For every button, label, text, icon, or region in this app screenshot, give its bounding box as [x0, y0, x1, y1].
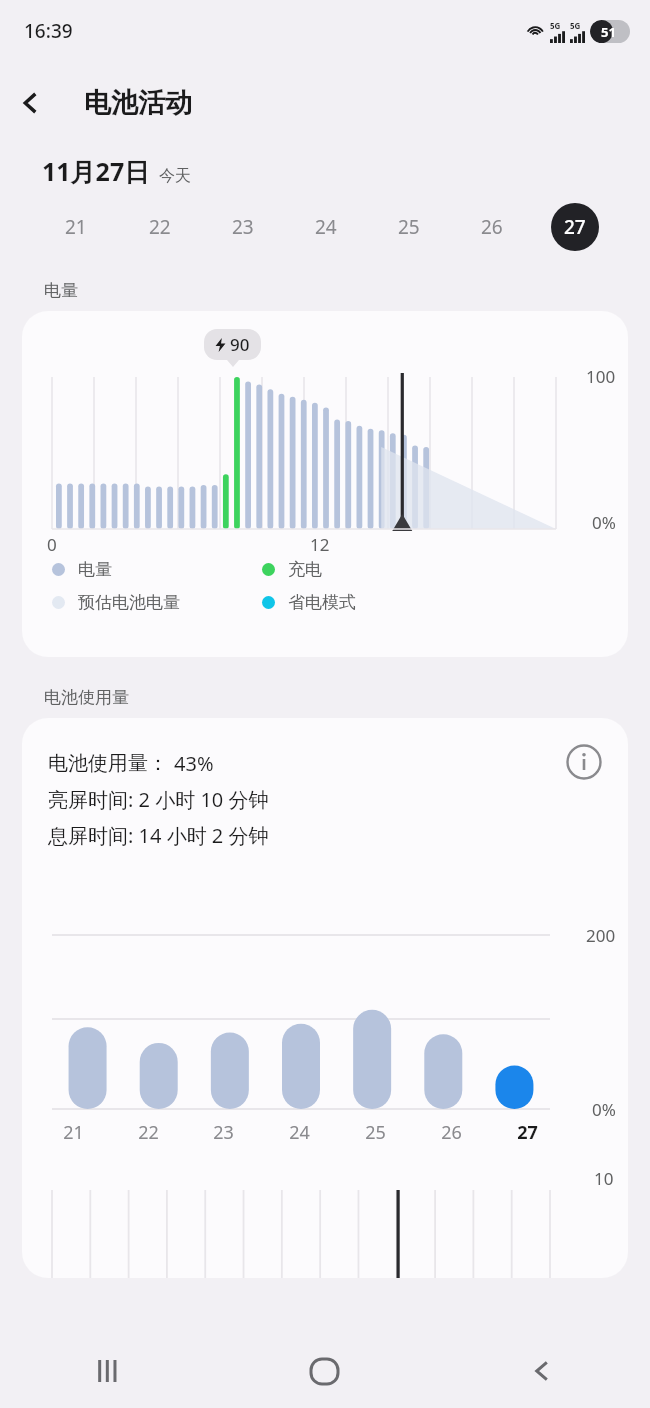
- staticText: 12: [310, 533, 330, 556]
- staticText: 200: [586, 924, 616, 947]
- staticText: 预估电池电量: [78, 592, 180, 613]
- staticText: 23: [232, 214, 254, 240]
- staticText: 电量: [78, 559, 112, 580]
- staticText: 充电: [288, 559, 322, 580]
- staticText: 27: [517, 1120, 538, 1145]
- staticText: 23: [213, 1120, 234, 1145]
- staticText: 11月27日: [42, 154, 150, 188]
- button[interactable]: 21: [34, 188, 118, 266]
- button[interactable]: 26: [450, 188, 533, 266]
- staticText: 电量: [44, 280, 78, 301]
- button[interactable]: Info: [562, 740, 606, 784]
- staticText: 24: [315, 214, 337, 240]
- staticText: 5G: [570, 20, 581, 31]
- staticText: 电池使用量：: [48, 751, 168, 776]
- staticText: 10: [594, 1167, 614, 1190]
- staticText: 22: [149, 214, 171, 240]
- staticText: 电池使用量: [44, 687, 129, 708]
- button[interactable]: Home: [216, 1334, 433, 1408]
- staticText: 24: [289, 1120, 310, 1145]
- staticText: 16:39: [24, 18, 73, 44]
- staticText: 27: [564, 214, 586, 240]
- button[interactable]: 24: [284, 188, 367, 266]
- button[interactable]: 25: [367, 188, 450, 266]
- staticText: 22: [138, 1120, 159, 1145]
- button[interactable]: 23: [201, 188, 284, 266]
- staticText: 26: [441, 1120, 462, 1145]
- staticText: 21: [63, 1120, 84, 1145]
- staticText: 0: [47, 533, 57, 556]
- button[interactable]: 电池使用量：: [22, 718, 628, 1278]
- button[interactable]: Back: [0, 72, 62, 134]
- button[interactable]: Back: [433, 1334, 650, 1408]
- staticText: 51: [601, 23, 616, 41]
- staticText: 90: [230, 333, 250, 356]
- staticText: 息屏时间: 14 小时 2 分钟: [48, 822, 269, 849]
- staticText: 0%: [592, 1098, 616, 1121]
- staticText: 26: [481, 214, 503, 240]
- staticText: 0%: [592, 511, 616, 534]
- staticText: 电池活动: [84, 86, 192, 120]
- button[interactable]: 22: [118, 188, 201, 266]
- button[interactable]: 27: [533, 188, 616, 266]
- staticText: 25: [398, 214, 420, 240]
- staticText: 25: [365, 1120, 386, 1145]
- staticText: 5G: [550, 20, 561, 31]
- staticText: 43%: [174, 750, 214, 777]
- staticText: 亮屏时间: 2 小时 10 分钟: [48, 786, 269, 813]
- button[interactable]: Recents: [0, 1334, 216, 1408]
- staticText: 21: [65, 214, 87, 240]
- button[interactable]: 100: [22, 311, 628, 657]
- staticText: 100: [586, 365, 616, 388]
- staticText: 省电模式: [288, 592, 356, 613]
- staticText: 今天: [159, 166, 191, 186]
